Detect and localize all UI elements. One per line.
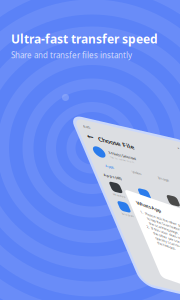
staticText: Chrome: [170, 196, 180, 200]
staticText: 1. Please ask the other person to tap th…: [132, 208, 180, 245]
staticText: WhatsApp: [132, 197, 158, 204]
staticText: Apps (48): [79, 175, 97, 180]
staticText: Facebook: [110, 196, 122, 200]
staticText: Spotify: [112, 218, 121, 221]
staticText: Maps: [143, 218, 149, 221]
staticText: Share and transfer files instantly: [11, 50, 132, 60]
staticText: Apps: [85, 163, 94, 169]
staticText: Tap to review them: [95, 152, 119, 156]
staticText: Video: [113, 163, 122, 169]
staticText: Gallery: [141, 196, 150, 200]
staticText: ←: [79, 131, 86, 140]
staticText: Ultra-fast transfer speed: [11, 31, 158, 47]
staticText: Choose File: [90, 131, 127, 140]
staticText: 3 File(s) Selected: [95, 147, 123, 152]
staticText: 8:45: [79, 122, 86, 127]
